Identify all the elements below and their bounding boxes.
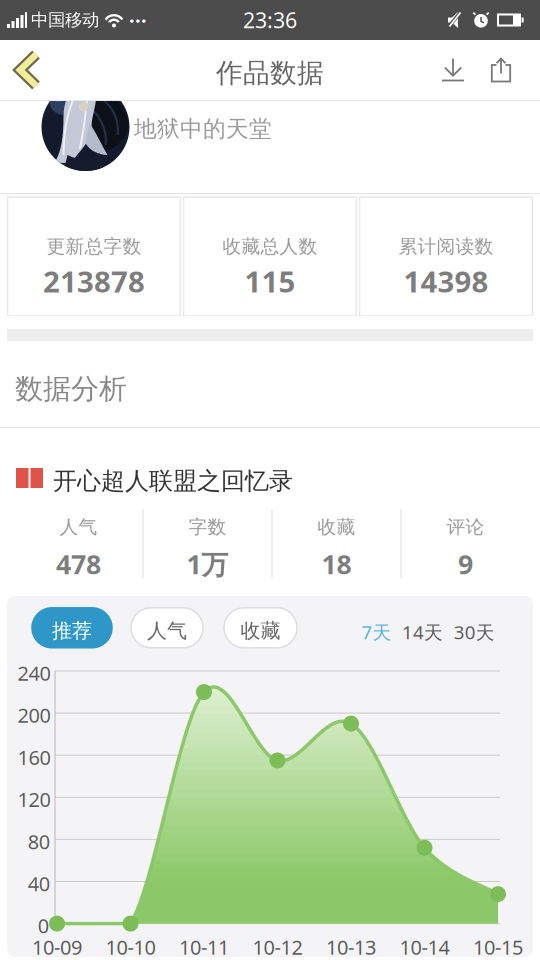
staticText: 收藏 [240,618,280,643]
staticText: 23:36 [243,6,297,34]
staticText: 10-11 [179,934,229,960]
staticText: 213878 [43,261,145,300]
button[interactable]: Download [442,58,464,81]
button[interactable]: 7天 [361,620,391,644]
staticText: 160 [17,744,50,770]
button[interactable]: Back [0,52,51,88]
staticText: 40 [28,870,50,897]
staticText: 14398 [403,261,488,300]
staticText: 9 [458,546,473,582]
staticText: 作品数据 [216,57,324,89]
staticText: 数据分析 [15,372,127,406]
staticText: 10-10 [105,934,155,960]
staticText: 收藏 [317,515,355,538]
staticText: 120 [17,786,50,813]
staticText: 0 [38,912,49,939]
staticText: 478 [56,546,101,582]
staticText: 人气 [147,618,187,643]
staticText: 1万 [186,546,228,582]
staticText: 人气 [59,515,97,538]
staticText: 10-14 [399,934,449,960]
staticText: 10-15 [473,934,523,960]
button[interactable]: Share [464,57,540,82]
staticText: 200 [17,702,50,728]
staticText: 7天 [361,620,391,644]
staticText: 115 [244,261,295,300]
staticText: 80 [28,828,50,855]
button[interactable]: 推荐 [32,608,112,648]
staticText: 累计阅读数 [398,235,493,258]
staticText: 10-13 [326,934,376,960]
staticText: 14天 [402,620,443,644]
button[interactable]: 收藏 [224,608,297,648]
staticText: 开心超人联盟之回忆录 [53,466,293,496]
staticText: 18 [321,546,351,582]
staticText: 中国移动 [31,9,99,31]
staticText: 240 [17,660,50,686]
button[interactable]: 30天 [454,620,495,644]
staticText: 更新总字数 [46,235,141,258]
staticText: 收藏总人数 [222,235,317,258]
staticText: 评论 [446,515,484,538]
staticText: 地狱中的天堂 [134,115,272,143]
staticText: 10-09 [32,934,82,960]
staticText: 推荐 [52,618,92,643]
staticText: 字数 [188,515,226,538]
staticText: 30天 [454,620,495,644]
button[interactable]: 人气 [131,608,203,648]
button[interactable]: 14天 [402,620,443,644]
staticText: ··· [129,7,147,33]
staticText: 10-12 [252,934,302,960]
